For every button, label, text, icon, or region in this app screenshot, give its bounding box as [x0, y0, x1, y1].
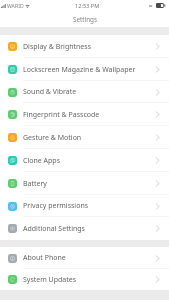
staticText: Gesture & Motion	[23, 133, 82, 143]
staticText: About Phone	[23, 253, 66, 263]
staticText: WARID	[7, 2, 24, 9]
button[interactable]: Battery	[0, 172, 169, 195]
button[interactable]: System Updates	[0, 269, 169, 290]
staticText: Battery	[23, 179, 47, 189]
staticText: Sound & Vibrate	[23, 87, 77, 97]
button[interactable]: Display & Brightness	[0, 35, 169, 58]
staticText: Lockscreen Magazine & Wallpaper	[23, 65, 136, 75]
button[interactable]: Sound & Vibrate	[0, 81, 169, 103]
button[interactable]: Clone Apps	[0, 149, 169, 172]
button[interactable]: Lockscreen Magazine & Wallpaper	[0, 58, 169, 81]
staticText: Additional Settings	[23, 224, 85, 234]
staticText: Fingerprint & Passcode	[23, 110, 100, 120]
button[interactable]: About Phone	[0, 247, 169, 269]
button[interactable]: Fingerprint & Passcode	[0, 103, 169, 126]
staticText: System Updates	[23, 275, 77, 285]
staticText: Settings	[73, 15, 97, 24]
button[interactable]: Gesture & Motion	[0, 126, 169, 149]
button[interactable]: Additional Settings	[0, 217, 169, 240]
staticText: Display & Brightness	[23, 42, 92, 52]
button[interactable]: Privacy permissions	[0, 195, 169, 217]
staticText: Privacy permissions	[23, 201, 89, 211]
staticText: Clone Apps	[23, 156, 60, 166]
staticText: 12:53 PM	[75, 2, 100, 10]
